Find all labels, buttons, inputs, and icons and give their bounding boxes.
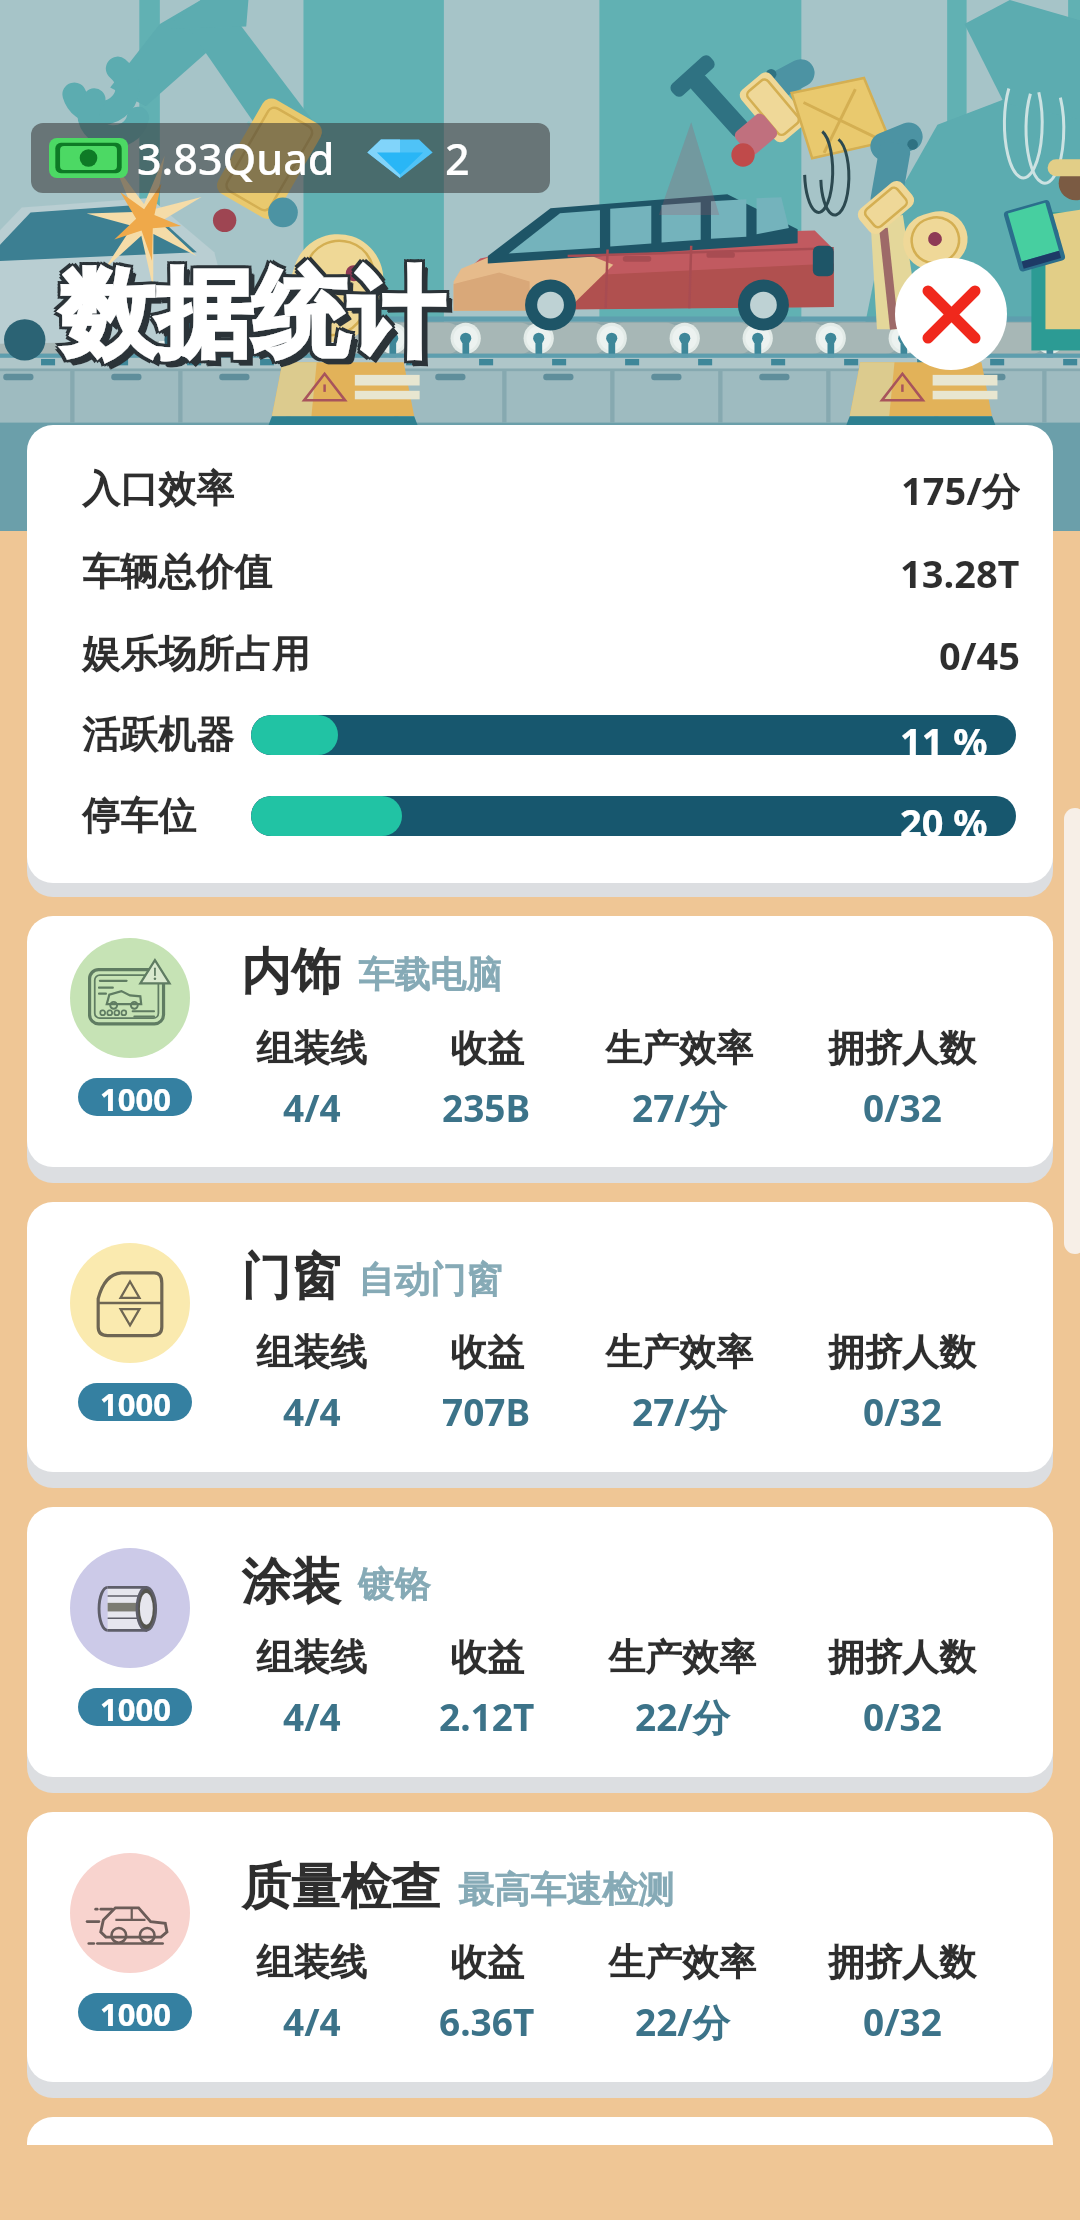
staticText: 0/32 xyxy=(863,1386,942,1436)
staticText: 涂装 xyxy=(241,1551,341,1614)
button[interactable]: 1000 xyxy=(27,1812,1053,2082)
staticText: 拥挤人数 xyxy=(828,1025,976,1072)
staticText: 活跃机器 xyxy=(82,711,234,759)
staticText: 组装线 xyxy=(256,1329,367,1376)
staticText: 4/4 xyxy=(283,1082,341,1132)
staticText: 22/分 xyxy=(635,1996,730,2047)
staticText: 数据统计 xyxy=(63,258,447,379)
staticText: 数据统计 xyxy=(63,255,447,376)
staticText: 数据统计 xyxy=(60,258,444,379)
staticText: 最高车速检测 xyxy=(458,1867,674,1912)
staticText: 拥挤人数 xyxy=(828,1634,976,1681)
staticText: 停车位 xyxy=(82,792,196,840)
staticText: 0/32 xyxy=(863,1691,942,1741)
staticText: 数据统计 xyxy=(66,261,450,382)
staticText: 20 % xyxy=(900,796,988,836)
staticText: 27/分 xyxy=(632,1386,727,1437)
staticText: 数据统计 xyxy=(57,258,441,379)
staticText: 收益 xyxy=(450,1939,524,1986)
staticText: 入口效率 xyxy=(82,465,234,513)
staticText: 0/45 xyxy=(939,629,1020,679)
staticText: 收益 xyxy=(450,1634,524,1681)
button[interactable]: Close xyxy=(895,258,1007,370)
button[interactable] xyxy=(27,2117,1053,2145)
staticText: 27/分 xyxy=(632,1082,727,1133)
staticText: 235B xyxy=(442,1082,531,1132)
staticText: 1000 xyxy=(100,1993,171,2031)
staticText: 4/4 xyxy=(283,1691,341,1741)
staticText: 数据统计 xyxy=(65,260,449,381)
staticText: 2.12T xyxy=(439,1691,535,1741)
staticText: 生产效率 xyxy=(605,1329,753,1376)
staticText: 内饰 xyxy=(241,941,341,1004)
staticText: 数据统计 xyxy=(63,252,447,373)
staticText: 1000 xyxy=(100,1688,171,1726)
button[interactable]: 1000 xyxy=(27,916,1053,1167)
staticText: 生产效率 xyxy=(605,1025,753,1072)
staticText: 0/32 xyxy=(863,1082,942,1132)
staticText: 自动门窗 xyxy=(358,1257,502,1302)
staticText: 13.28T xyxy=(900,547,1020,597)
staticText: 数据统计 xyxy=(57,252,441,373)
staticText: 1000 xyxy=(100,1383,171,1421)
staticText: 质量检查 xyxy=(241,1856,441,1919)
staticText: 组装线 xyxy=(256,1025,367,1072)
button[interactable]: 1000 xyxy=(27,1507,1053,1777)
staticText: 收益 xyxy=(450,1329,524,1376)
staticText: 收益 xyxy=(450,1025,524,1072)
staticText: 175/分 xyxy=(901,464,1020,514)
staticText: 2 xyxy=(445,129,470,188)
staticText: 0/32 xyxy=(863,1996,942,2046)
staticText: 镀铬 xyxy=(358,1562,430,1607)
staticText: 车辆总价值 xyxy=(82,548,272,596)
button[interactable]: 3.83Quad xyxy=(31,123,550,193)
staticText: 6.36T xyxy=(439,1996,535,2046)
button[interactable]: 1000 xyxy=(27,1202,1053,1472)
staticText: 组装线 xyxy=(256,1634,367,1681)
staticText: 拥挤人数 xyxy=(828,1329,976,1376)
staticText: 组装线 xyxy=(256,1939,367,1986)
staticText: 22/分 xyxy=(635,1691,730,1742)
staticText: 11 % xyxy=(900,715,988,755)
staticText: 707B xyxy=(442,1386,531,1436)
staticText: 3.83Quad xyxy=(137,129,335,188)
staticText: 门窗 xyxy=(241,1246,341,1309)
staticText: 4/4 xyxy=(283,1386,341,1436)
staticText: 4/4 xyxy=(283,1996,341,2046)
staticText: 数据统计 xyxy=(60,252,444,373)
staticText: 生产效率 xyxy=(608,1634,756,1681)
staticText: 数据统计 xyxy=(57,255,441,376)
staticText: 车载电脑 xyxy=(358,952,502,997)
staticText: 拥挤人数 xyxy=(828,1939,976,1986)
staticText: 数据统计 xyxy=(60,255,444,376)
staticText: 生产效率 xyxy=(608,1939,756,1986)
staticText: 1000 xyxy=(100,1078,171,1116)
staticText: 娱乐场所占用 xyxy=(82,630,310,678)
